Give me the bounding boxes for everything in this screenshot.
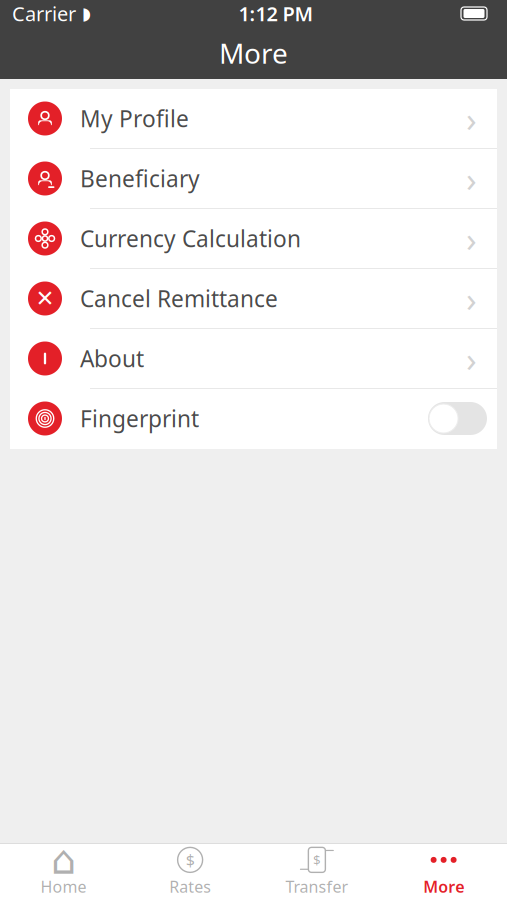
staticText: My Profile xyxy=(80,103,189,133)
staticText: › xyxy=(466,155,477,201)
staticText: Rates xyxy=(169,876,211,897)
staticText: › xyxy=(466,95,477,141)
staticText: ✕ xyxy=(35,286,54,311)
button[interactable]: My Profile xyxy=(10,89,497,149)
staticText: › xyxy=(466,275,477,321)
staticText: ⌂ xyxy=(51,837,76,883)
button[interactable]: ⌂ xyxy=(0,843,127,900)
staticText: More xyxy=(219,34,288,72)
staticText: About xyxy=(80,343,144,373)
button[interactable]: Fingerprint xyxy=(10,389,497,449)
staticText: 1:12 PM xyxy=(238,0,313,27)
staticText: › xyxy=(466,215,477,261)
staticText: Carrier xyxy=(12,0,76,27)
button[interactable]: Currency Calculation xyxy=(10,209,497,269)
staticText: Cancel Remittance xyxy=(80,283,278,313)
staticText: Transfer xyxy=(285,876,348,897)
button[interactable]: $ xyxy=(253,843,380,900)
staticText: $ xyxy=(186,849,195,870)
staticText: Currency Calculation xyxy=(80,223,301,253)
staticText: Home xyxy=(40,876,86,897)
staticText: More xyxy=(423,876,464,897)
button[interactable]: $ xyxy=(127,843,254,900)
staticText: Beneficiary xyxy=(80,163,200,193)
staticText: Fingerprint xyxy=(80,403,199,433)
staticText: $ xyxy=(313,851,321,869)
staticText: ◗ xyxy=(82,4,91,23)
button[interactable]: More xyxy=(380,843,507,900)
button[interactable]: Beneficiary xyxy=(10,149,497,209)
button[interactable]: ✕ xyxy=(10,269,497,329)
staticText: › xyxy=(466,335,477,381)
button[interactable]: About xyxy=(10,329,497,389)
